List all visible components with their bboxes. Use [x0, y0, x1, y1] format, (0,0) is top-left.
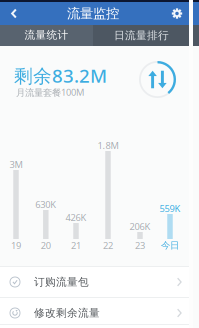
staticText: 206K: [129, 220, 150, 233]
staticText: 1.8M: [97, 139, 118, 152]
staticText: 426K: [65, 211, 86, 224]
staticText: 21: [71, 239, 81, 252]
button[interactable]: 日流量排行: [93, 25, 190, 46]
staticText: 23: [135, 239, 145, 252]
button[interactable]: 订购流量包: [0, 267, 190, 297]
staticText: 19: [11, 239, 21, 252]
staticText: 流量监控: [67, 5, 119, 22]
staticText: 今日: [161, 240, 179, 251]
button[interactable]: Back: [0, 2, 28, 25]
staticText: 22: [103, 239, 113, 252]
staticText: 3M: [9, 158, 22, 171]
button[interactable]: Settings: [165, 2, 189, 25]
staticText: 630K: [35, 198, 56, 211]
staticText: 订购流量包: [34, 275, 89, 288]
staticText: 月流量套餐100M: [16, 86, 84, 98]
staticText: 20: [41, 239, 51, 252]
button[interactable]: 流量统计: [0, 25, 93, 45]
staticText: 559K: [159, 202, 180, 215]
staticText: 修改剩余流量: [34, 306, 100, 319]
staticText: 流量统计: [24, 28, 68, 41]
button[interactable]: 修改剩余流量: [0, 298, 190, 328]
staticText: 剩余83.2M: [14, 63, 107, 88]
staticText: 日流量排行: [114, 29, 169, 42]
